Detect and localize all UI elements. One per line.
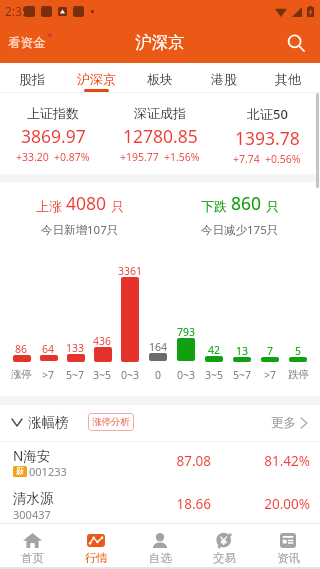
staticText: 793 — [177, 325, 196, 339]
staticText: +0.87% — [54, 150, 90, 164]
button[interactable]: 涨停分析 — [88, 413, 134, 431]
staticText: 18.66 — [141, 495, 211, 513]
staticText: 上证指数 — [27, 105, 79, 121]
button[interactable]: 436 — [89, 248, 116, 396]
button[interactable]: 北证50 — [213, 93, 320, 174]
button[interactable]: 793 — [172, 248, 200, 396]
staticText: 2:35 — [5, 3, 29, 19]
staticText: 沪深京 — [77, 71, 116, 87]
button[interactable]: 股指 — [0, 63, 64, 93]
button[interactable]: 交易 — [192, 524, 256, 567]
staticText: 其他 — [275, 71, 301, 87]
staticText: 5~7 — [233, 368, 252, 382]
staticText: 清水源 — [13, 490, 54, 507]
button[interactable]: 13 — [228, 248, 256, 396]
staticText: 0~3 — [177, 368, 196, 382]
button[interactable]: 自选 — [128, 524, 192, 567]
staticText: 3869.97 — [21, 124, 86, 148]
staticText: 跌停 — [288, 368, 309, 381]
staticText: 今日新增107只 — [41, 222, 119, 238]
button[interactable]: 上证指数 — [0, 93, 106, 174]
staticText: 300437 — [13, 507, 51, 522]
staticText: 5~7 — [66, 368, 85, 382]
staticText: 13 — [236, 344, 249, 358]
staticText: 5 — [295, 344, 302, 358]
staticText: 87.08 — [141, 452, 211, 470]
button[interactable]: 沪深京 — [64, 63, 128, 93]
staticText: 3361 — [118, 264, 143, 278]
staticText: 3~5 — [93, 368, 112, 382]
button[interactable]: 5 — [284, 248, 312, 396]
staticText: 86 — [15, 342, 28, 356]
staticText: 1393.78 — [235, 126, 300, 150]
staticText: 自选 — [149, 551, 172, 565]
staticText: N海安 — [13, 447, 51, 465]
button[interactable]: 3361 — [116, 248, 144, 396]
staticText: 只 — [266, 198, 279, 214]
staticText: 164 — [149, 340, 168, 354]
staticText: 81.42% — [240, 452, 310, 470]
button[interactable]: 42 — [200, 248, 228, 396]
staticText: 首页 — [21, 551, 44, 565]
button[interactable]: 看资金 — [0, 22, 58, 63]
staticText: 今日减少175只 — [201, 222, 279, 238]
staticText: +7.74 — [233, 152, 260, 166]
staticText: 新 — [16, 466, 25, 477]
staticText: 看资金 — [8, 35, 46, 51]
button[interactable]: 港股 — [192, 63, 256, 93]
button[interactable]: 上涨 — [0, 182, 160, 248]
staticText: 133 — [66, 341, 85, 355]
staticText: 0~3 — [121, 368, 140, 382]
button[interactable]: 其他 — [256, 63, 320, 93]
staticText: +33.20 — [16, 150, 49, 164]
staticText: 深证成指 — [134, 105, 186, 121]
button[interactable]: 行情 — [64, 524, 128, 567]
button[interactable]: 涨幅榜 — [0, 410, 73, 435]
staticText: 更多 — [271, 415, 296, 431]
button[interactable]: 86 — [8, 248, 35, 396]
staticText: 港股 — [211, 71, 237, 87]
staticText: +0.56% — [265, 152, 301, 166]
button[interactable]: 64 — [35, 248, 62, 396]
staticText: 7 — [267, 344, 274, 358]
staticText: 3~5 — [205, 368, 224, 382]
staticText: 860 — [231, 191, 262, 215]
staticText: 资讯 — [277, 551, 300, 565]
button[interactable]: N海安 — [0, 442, 320, 485]
staticText: >7 — [42, 368, 55, 382]
staticText: 上涨 — [36, 198, 62, 214]
staticText: 42 — [208, 343, 221, 357]
button[interactable]: 164 — [144, 248, 172, 396]
staticText: 0 — [155, 368, 162, 382]
staticText: 股指 — [19, 71, 45, 87]
staticText: 涨停 — [11, 368, 32, 381]
staticText: >7 — [264, 368, 277, 382]
staticText: 北证50 — [247, 105, 288, 123]
button[interactable]: 首页 — [0, 524, 64, 567]
button[interactable]: 133 — [62, 248, 89, 396]
button[interactable]: 资讯 — [256, 524, 320, 567]
button[interactable]: 清水源 — [0, 485, 320, 523]
staticText: 12780.85 — [123, 124, 198, 148]
button[interactable]: Search — [279, 26, 313, 60]
staticText: 行情 — [85, 551, 108, 565]
button[interactable]: 下跌 — [160, 182, 320, 248]
staticText: 沪深京 — [135, 32, 185, 53]
staticText: 64 — [42, 342, 55, 356]
staticText: 涨停分析 — [92, 416, 130, 428]
staticText: 001233 — [29, 464, 67, 479]
staticText: 4080 — [66, 191, 107, 215]
button[interactable]: 7 — [256, 248, 284, 396]
staticText: +1.56% — [164, 150, 200, 164]
staticText: +195.77 — [120, 150, 159, 164]
button[interactable]: 深证成指 — [106, 93, 213, 174]
staticText: 板块 — [147, 71, 173, 87]
staticText: 436 — [93, 334, 112, 348]
button[interactable]: 更多 — [265, 411, 320, 435]
staticText: 交易 — [213, 551, 236, 565]
button[interactable]: 板块 — [128, 63, 192, 93]
staticText: 只 — [111, 198, 124, 214]
staticText: 20.00% — [240, 495, 310, 513]
staticText: 下跌 — [201, 198, 227, 214]
staticText: 涨幅榜 — [28, 414, 69, 431]
